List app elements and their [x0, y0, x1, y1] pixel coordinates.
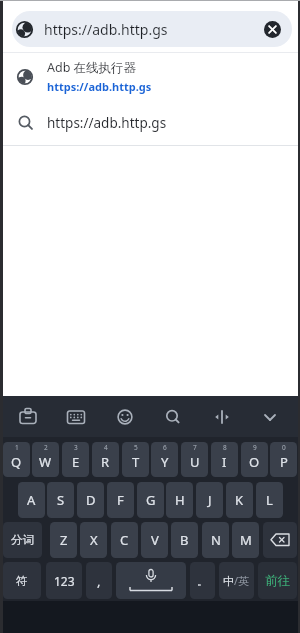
staticText: Adb 在线执行器	[47, 59, 137, 76]
button[interactable]: 符	[3, 562, 41, 599]
staticText: F	[117, 491, 124, 509]
staticText: W	[39, 453, 52, 471]
staticText: N	[211, 531, 221, 549]
button[interactable]: J	[196, 482, 223, 518]
button[interactable]: X	[80, 522, 107, 558]
staticText: B	[180, 531, 189, 549]
button[interactable]: Adb 在线执行器	[0, 53, 300, 100]
button[interactable]	[255, 402, 285, 432]
staticText: L	[266, 491, 273, 509]
staticText: 前往	[265, 573, 290, 589]
staticText: 。	[197, 574, 208, 588]
button[interactable]: Z	[50, 522, 77, 558]
staticText: 9	[253, 443, 257, 452]
button[interactable]: B	[171, 522, 198, 558]
staticText: ,	[97, 572, 101, 590]
button[interactable]: V	[141, 522, 168, 558]
staticText: V	[151, 531, 159, 549]
staticText: A	[27, 491, 36, 509]
staticText: 7	[193, 443, 197, 452]
staticText: J	[208, 491, 212, 509]
staticText: 5	[134, 443, 138, 452]
button[interactable]: R	[92, 442, 119, 477]
button[interactable]: 。	[190, 562, 215, 599]
button[interactable]: M	[232, 522, 259, 558]
button[interactable]: 123	[46, 562, 82, 599]
staticText: D	[86, 491, 96, 509]
staticText: 8	[223, 443, 227, 452]
button[interactable]: Y	[151, 442, 178, 477]
button[interactable]	[158, 402, 188, 432]
staticText: M	[240, 531, 252, 549]
button[interactable]	[61, 402, 91, 432]
button[interactable]: N	[202, 522, 229, 558]
button[interactable]	[263, 522, 297, 558]
button[interactable]: https://adb.http.gs	[0, 100, 300, 145]
button[interactable]: P	[270, 442, 297, 477]
staticText: 中/英	[223, 573, 250, 588]
staticText: G	[146, 491, 156, 509]
button[interactable]: L	[256, 482, 283, 518]
staticText: 4	[104, 443, 108, 452]
button[interactable]: https://adb.http.gs	[12, 11, 292, 47]
staticText: 1	[15, 443, 19, 452]
button[interactable]: ,	[86, 562, 112, 599]
staticText: 6	[163, 443, 167, 452]
staticText: Z	[60, 531, 68, 549]
staticText: I	[222, 453, 227, 471]
staticText: E	[72, 453, 80, 471]
staticText: S	[57, 491, 65, 509]
staticText: R	[101, 453, 110, 471]
staticText: 2	[44, 443, 48, 452]
staticText: C	[120, 531, 129, 549]
button[interactable]: S	[47, 482, 74, 518]
button[interactable]: U	[181, 442, 208, 477]
button[interactable]: I	[211, 442, 238, 477]
staticText: 123	[54, 573, 75, 589]
button[interactable]: A	[18, 482, 45, 518]
staticText: 3	[74, 443, 78, 452]
staticText: P	[280, 453, 288, 471]
button[interactable]: 中/英	[219, 562, 254, 599]
staticText: Y	[161, 453, 169, 471]
staticText: U	[190, 453, 200, 471]
button[interactable]: W	[32, 442, 59, 477]
staticText: T	[132, 453, 140, 471]
staticText: 分词	[11, 533, 34, 547]
button[interactable]: 前往	[258, 562, 297, 599]
staticText: https://adb.http.gs	[44, 20, 168, 39]
staticText: https://adb.http.gs	[47, 79, 152, 94]
button[interactable]: H	[166, 482, 193, 518]
button[interactable]: T	[122, 442, 149, 477]
button[interactable]	[110, 402, 140, 432]
staticText: 0	[282, 443, 286, 452]
button[interactable]	[116, 562, 186, 599]
button[interactable]	[264, 21, 281, 38]
button[interactable]: D	[77, 482, 104, 518]
button[interactable]: F	[107, 482, 134, 518]
staticText: Q	[11, 453, 22, 471]
button[interactable]: G	[137, 482, 164, 518]
button[interactable]: C	[111, 522, 138, 558]
button[interactable]: Q	[3, 442, 30, 477]
staticText: 符	[16, 574, 28, 588]
staticText: O	[249, 453, 260, 471]
button[interactable]: 分词	[3, 522, 42, 558]
button[interactable]	[207, 402, 237, 432]
staticText: K	[235, 491, 244, 509]
staticText: H	[175, 491, 185, 509]
button[interactable]: O	[241, 442, 268, 477]
staticText: X	[90, 531, 98, 549]
staticText: https://adb.http.gs	[47, 114, 167, 132]
button[interactable]: K	[226, 482, 253, 518]
button[interactable]	[13, 402, 43, 432]
button[interactable]: E	[62, 442, 89, 477]
